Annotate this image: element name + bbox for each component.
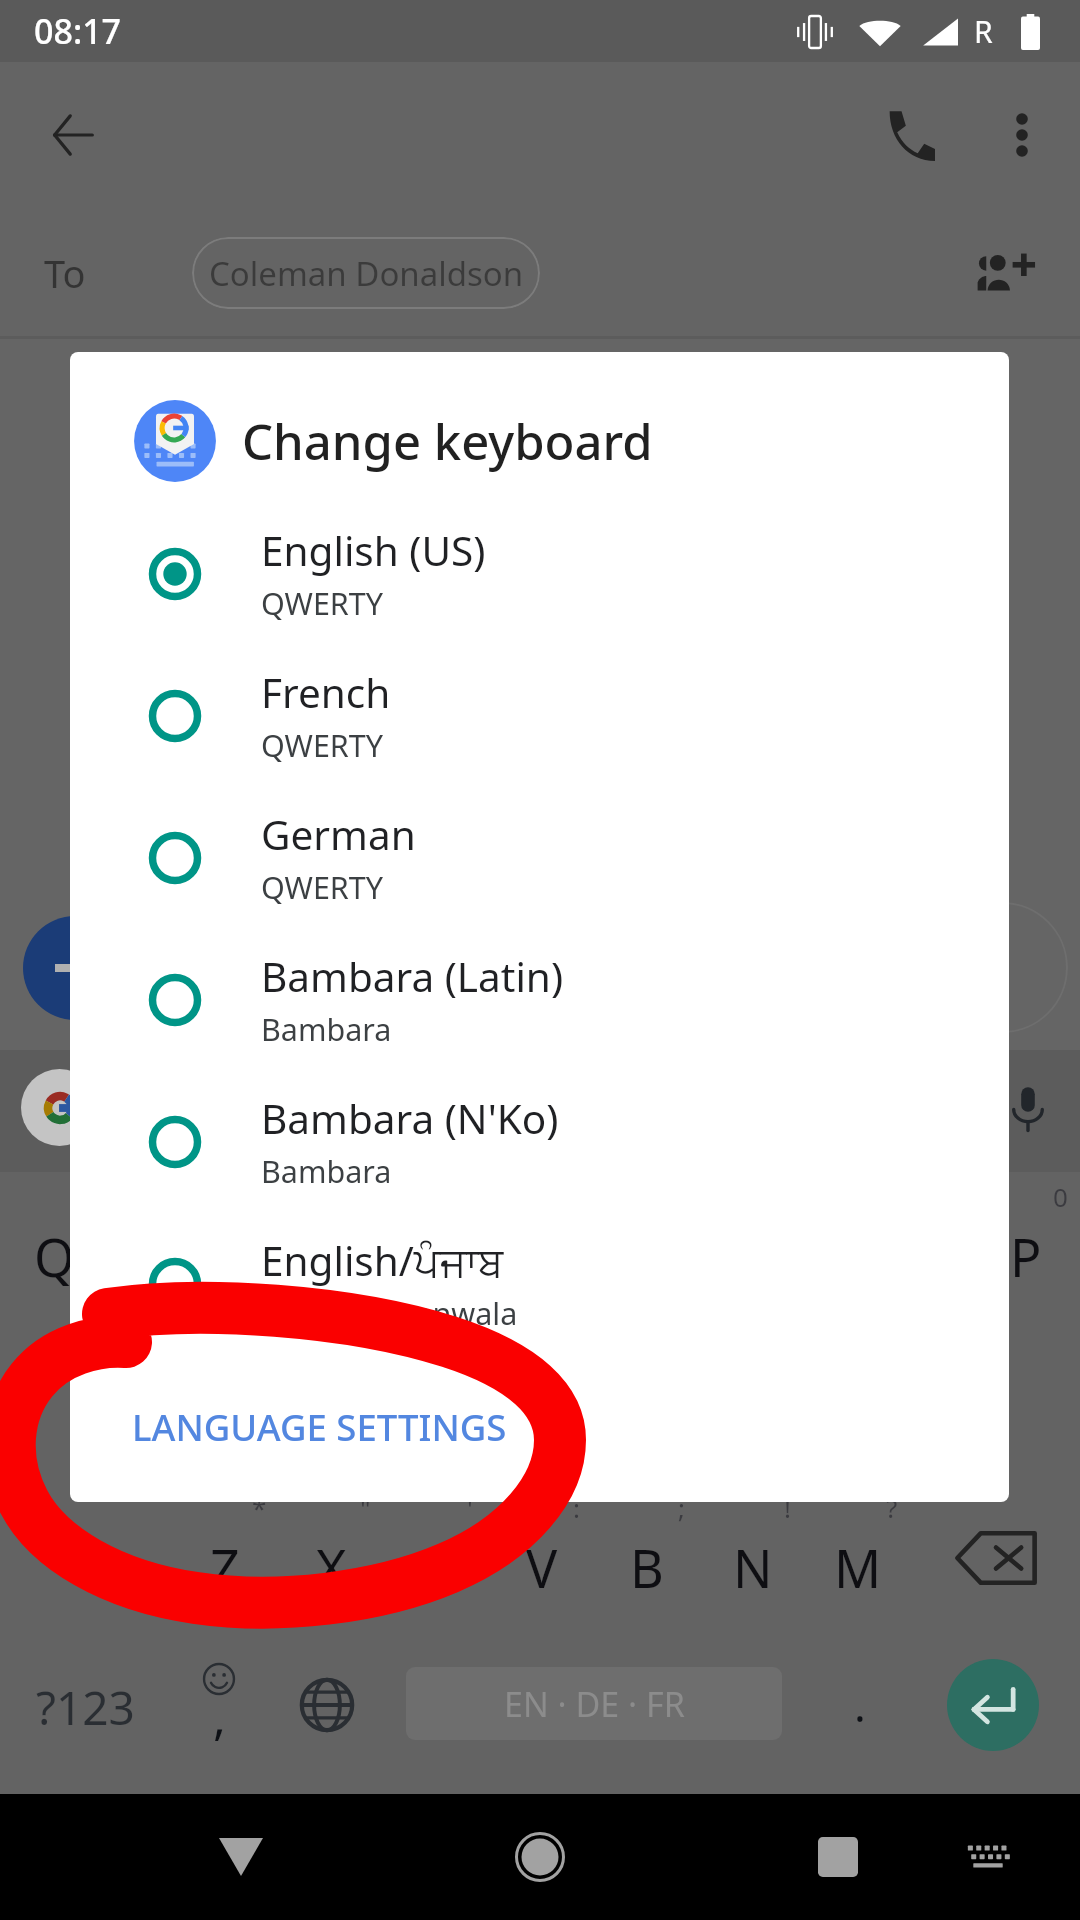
button[interactable]: Recents [793,1812,883,1902]
button[interactable]: W [108,1177,216,1317]
staticText: ? [886,1490,898,1525]
button[interactable]: Send [23,916,127,1020]
button[interactable]: E [216,1177,324,1317]
staticText: Change keyboard [242,408,653,475]
button[interactable]: M [805,1488,911,1628]
button[interactable]: German [70,787,1009,929]
button[interactable]: LANGUAGE SETTINGS [70,1352,1009,1502]
button[interactable]: English/ਪੰਜਾਬ [70,1213,1009,1355]
staticText: English/ਪੰਜਾਬ [261,1233,504,1288]
staticText: QWERTY [261,724,384,766]
staticText: Punjabi Phonwala [261,1292,518,1334]
button[interactable]: Switch keyboard [943,1812,1033,1902]
button[interactable]: . [818,1655,902,1755]
button[interactable]: L [918,1332,1026,1472]
staticText: * [252,1490,267,1525]
button[interactable]: Enter [947,1659,1039,1751]
staticText: EN · DE · FR [504,1681,685,1727]
button[interactable]: French [70,645,1009,787]
staticText: French [261,665,391,720]
button[interactable]: N [700,1488,806,1628]
button[interactable]: Back [196,1812,286,1902]
button[interactable]: A [54,1332,162,1472]
staticText: 3 [297,1179,312,1214]
button[interactable]: Coleman Donaldson [192,237,540,309]
staticText: Bambara (N'Ko) [261,1091,559,1146]
button[interactable]: D [270,1332,378,1472]
staticText: @ [130,1334,154,1369]
staticText: W [138,1221,187,1292]
staticText: D [305,1376,343,1447]
button[interactable]: More options [987,100,1057,170]
staticText: Z [210,1532,240,1603]
button[interactable]: Z [172,1488,278,1628]
staticText: N [733,1532,773,1603]
staticText: R [974,11,993,52]
button[interactable]: B [594,1488,700,1628]
button[interactable]: Google search [21,1069,98,1146]
button[interactable]: Bambara (N'Ko) [70,1071,1009,1213]
staticText: Bambara (Latin) [261,949,564,1004]
staticText: M [834,1532,882,1603]
staticText: $ [351,1334,366,1369]
staticText: To [44,247,86,299]
staticText: # [242,1334,259,1369]
button[interactable]: Call [873,100,943,170]
button[interactable]: F [378,1332,486,1472]
staticText: ) [1002,1334,1010,1369]
staticText: 0 [1053,1179,1068,1214]
button[interactable]: R [324,1177,432,1317]
button[interactable]: Voice input [994,1074,1062,1142]
button[interactable]: EN · DE · FR [406,1667,782,1740]
button[interactable]: Backspace [950,1516,1042,1600]
staticText: S [202,1376,231,1447]
staticText: P [1010,1221,1042,1292]
button[interactable]: Q [0,1177,108,1317]
button[interactable]: Shift [43,1516,127,1600]
staticText: English (US) [261,523,486,578]
staticText: B [630,1532,664,1603]
button[interactable]: Add contact [973,238,1043,308]
button[interactable]: Write an SMS [160,902,1068,1033]
staticText: Write an SMS [216,941,465,995]
staticText: , [213,1684,226,1749]
button[interactable]: X [278,1488,384,1628]
button[interactable]: Home [495,1812,585,1902]
button[interactable]: P [972,1177,1080,1317]
staticText: ?123 [36,1676,135,1739]
button[interactable]: C [383,1488,489,1628]
button[interactable]: T [432,1177,540,1317]
staticText: C [420,1532,453,1603]
button[interactable]: English (US) [70,503,1009,645]
staticText: G [521,1376,559,1447]
staticText: . [854,1675,866,1735]
button[interactable]: Back [38,100,108,170]
button[interactable]: ?123 [10,1650,160,1760]
button[interactable]: V [489,1488,595,1628]
button[interactable]: Bambara (Latin) [70,929,1009,1071]
button[interactable]: S [162,1332,270,1472]
staticText: E [256,1221,285,1292]
button[interactable]: Change language [287,1665,367,1745]
staticText: QWERTY [261,866,384,908]
button[interactable]: G [486,1332,594,1472]
staticText: Bambara [261,1008,392,1050]
button[interactable]: Emoji and comma [182,1643,256,1763]
staticText: German [261,807,416,862]
